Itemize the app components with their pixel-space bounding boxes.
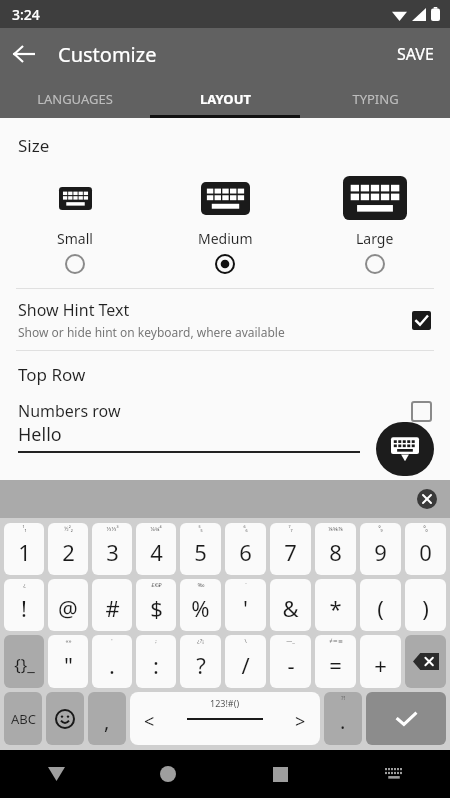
button[interactable]: £€₽ bbox=[136, 579, 176, 631]
button[interactable]: «» bbox=[48, 635, 88, 688]
staticText: ¨ bbox=[244, 581, 248, 589]
button[interactable]: ⁵₅ bbox=[180, 523, 221, 575]
button[interactable]: ¹₁ bbox=[4, 523, 44, 575]
button[interactable]: Switch keyboard bbox=[337, 750, 450, 798]
staticText: Show Hint Text bbox=[18, 299, 130, 321]
button[interactable]: \ bbox=[225, 635, 266, 688]
button[interactable]: @ bbox=[48, 579, 88, 631]
staticText: @ bbox=[58, 593, 78, 623]
button[interactable]: Close suggestions bbox=[416, 488, 438, 510]
button[interactable]: * bbox=[315, 579, 356, 631]
staticText: ½²₂ bbox=[64, 525, 73, 533]
staticText: 7 bbox=[284, 537, 297, 567]
button[interactable]: Show Hint Text bbox=[0, 289, 450, 350]
staticText: «» bbox=[65, 637, 72, 645]
button[interactable]: Toggle bbox=[410, 309, 432, 331]
button[interactable]: ¼¾⁴ bbox=[136, 523, 176, 575]
button[interactable]: Back bbox=[0, 750, 112, 798]
staticText: Numbers row bbox=[18, 400, 410, 422]
staticText: 2 bbox=[62, 537, 75, 567]
staticText: Hello bbox=[18, 422, 62, 447]
button[interactable]: Small bbox=[0, 171, 150, 278]
staticText: LAYOUT bbox=[200, 90, 251, 108]
button[interactable]: ; bbox=[136, 635, 176, 688]
button[interactable]: + bbox=[360, 635, 401, 688]
staticText: = bbox=[329, 650, 342, 680]
staticText: 6 bbox=[239, 537, 252, 567]
button[interactable]: ¨ bbox=[225, 579, 266, 631]
button[interactable]: , bbox=[88, 692, 126, 745]
button[interactable]: ⁰₀ bbox=[405, 523, 446, 575]
staticText: 8 bbox=[329, 537, 342, 567]
button[interactable]: Toggle bbox=[410, 400, 432, 422]
staticText: Customize bbox=[58, 41, 157, 68]
staticText: ?! bbox=[341, 694, 346, 702]
staticText: ⁰₀ bbox=[423, 525, 428, 533]
staticText: ≠≈≡ bbox=[329, 637, 343, 645]
staticText: £€₽ bbox=[151, 581, 162, 589]
staticText: : bbox=[153, 650, 159, 680]
button[interactable]: ( bbox=[360, 579, 401, 631]
staticText: Top Row bbox=[18, 363, 86, 386]
staticText: TYPING bbox=[352, 90, 399, 108]
button[interactable]: ½²₂ bbox=[48, 523, 88, 575]
button[interactable]: Space bbox=[130, 692, 320, 745]
button[interactable]: ?! bbox=[324, 692, 362, 745]
button[interactable]: Backspace bbox=[405, 635, 446, 688]
staticText: > bbox=[295, 709, 306, 734]
button[interactable]: {}_ bbox=[4, 635, 44, 688]
staticText: 1 bbox=[18, 537, 31, 567]
button[interactable]: Medium bbox=[150, 171, 300, 278]
button[interactable]: ⅛⅝⅞ bbox=[315, 523, 356, 575]
staticText: ¼¾⁴ bbox=[150, 525, 162, 533]
button[interactable]: —_ bbox=[270, 635, 311, 688]
button[interactable]: ⁶₆ bbox=[225, 523, 266, 575]
button[interactable]: Emoji bbox=[46, 692, 84, 745]
staticText: * bbox=[329, 593, 342, 623]
staticText: 4 bbox=[150, 537, 163, 567]
staticText: - bbox=[287, 650, 295, 680]
button[interactable]: Enter bbox=[366, 692, 446, 745]
staticText: ' bbox=[111, 637, 113, 645]
staticText: ? bbox=[196, 650, 206, 680]
button[interactable]: ¿?¡ bbox=[180, 635, 221, 688]
button[interactable]: ‰ bbox=[180, 579, 221, 631]
button[interactable]: ABC bbox=[4, 692, 42, 745]
button[interactable]: ≠≈≡ bbox=[315, 635, 356, 688]
button[interactable]: Hide keyboard bbox=[376, 422, 434, 476]
staticText: ! bbox=[21, 593, 27, 623]
button[interactable]: # bbox=[92, 579, 132, 631]
button[interactable]: LANGUAGES bbox=[0, 80, 150, 118]
button[interactable]: Home bbox=[112, 750, 224, 798]
button[interactable]: ⁷₇ bbox=[270, 523, 311, 575]
staticText: Small bbox=[57, 229, 93, 248]
button[interactable]: Numbers row bbox=[0, 386, 450, 422]
staticText: Size bbox=[18, 134, 50, 157]
staticText: ¿ bbox=[23, 581, 26, 589]
button[interactable]: TYPING bbox=[300, 80, 450, 118]
staticText: ‰ bbox=[197, 581, 205, 589]
staticText: 3 bbox=[106, 537, 119, 567]
button[interactable]: ) bbox=[405, 579, 446, 631]
staticText: ⁶₆ bbox=[243, 525, 248, 533]
button[interactable]: Large bbox=[300, 171, 450, 278]
staticText: . bbox=[340, 708, 346, 735]
button[interactable]: ⁹₉ bbox=[360, 523, 401, 575]
staticText: 3:24 bbox=[12, 5, 40, 24]
button[interactable]: SAVE bbox=[381, 31, 450, 77]
staticText: / bbox=[241, 650, 250, 680]
button[interactable]: LAYOUT bbox=[150, 80, 300, 118]
staticText: . bbox=[109, 650, 115, 680]
button[interactable]: Back bbox=[0, 30, 48, 78]
button[interactable]: & bbox=[270, 579, 311, 631]
staticText: 0 bbox=[419, 537, 432, 567]
button[interactable]: ¿ bbox=[4, 579, 44, 631]
button[interactable]: ⅓⅓³ bbox=[92, 523, 132, 575]
button[interactable]: Recents bbox=[224, 750, 337, 798]
button[interactable]: ' bbox=[92, 635, 132, 688]
staticText: ( bbox=[377, 593, 384, 623]
staticText: " bbox=[64, 650, 73, 680]
staticText: ABC bbox=[11, 710, 36, 728]
staticText: 9 bbox=[374, 537, 387, 567]
staticText: 5 bbox=[194, 537, 207, 567]
